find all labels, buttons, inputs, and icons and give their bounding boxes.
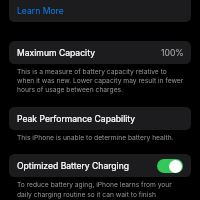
button[interactable]: Optimized Battery Charging toggle <box>157 159 183 173</box>
button[interactable]: Peak Performance Capability <box>9 107 191 130</box>
staticText: hours of usage between charges. <box>17 86 123 94</box>
staticText: when it was new. Lower capacity may resu… <box>17 77 184 85</box>
staticText: Learn More <box>17 6 64 16</box>
staticText: Maximum Capacity <box>17 48 95 58</box>
staticText: This is a measure of battery capacity re… <box>17 68 167 76</box>
button[interactable]: Learn More <box>9 0 191 22</box>
staticText: To reduce battery aging, iPhone learns f… <box>17 181 172 189</box>
staticText: 100% <box>161 48 184 58</box>
staticText: Peak Performance Capability <box>17 114 136 124</box>
button[interactable]: Maximum Capacity <box>9 41 191 64</box>
staticText: daily charging routine so it can wait to… <box>17 191 156 199</box>
staticText: This iPhone is unable to determine batte… <box>17 134 174 142</box>
staticText: Optimized Battery Charging <box>17 161 130 171</box>
